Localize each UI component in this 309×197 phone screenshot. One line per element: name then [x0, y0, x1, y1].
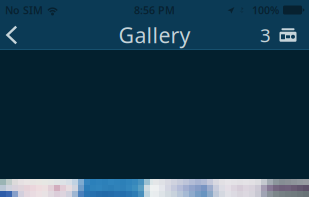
button[interactable]: Back — [0, 20, 26, 50]
staticText: No SIM — [5, 3, 43, 17]
button[interactable]: Albums — [260, 20, 309, 50]
staticText: 100% — [252, 3, 279, 17]
staticText: 8:56 PM — [134, 3, 175, 17]
staticText: 3 — [260, 23, 271, 47]
staticText: Gallery — [118, 21, 190, 49]
